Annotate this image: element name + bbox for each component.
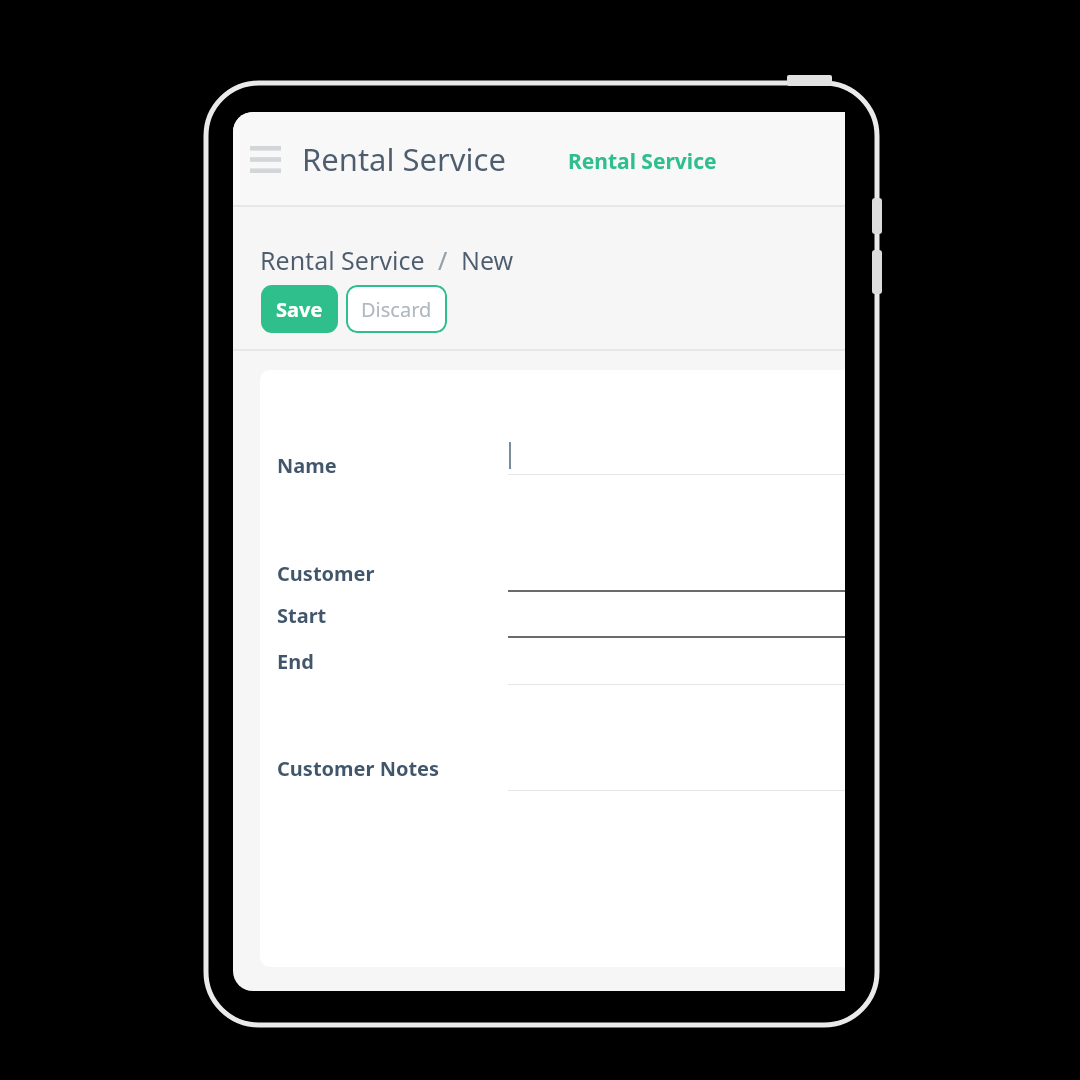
staticText: Name [277, 452, 337, 479]
button[interactable]: Discard [346, 285, 447, 333]
staticText: Discard [361, 296, 432, 323]
staticText: / [425, 243, 461, 277]
staticText: Save [276, 296, 323, 323]
button[interactable]: Rental Service [302, 138, 506, 180]
staticText: Start [277, 602, 327, 629]
button[interactable]: Customer Notes input [508, 757, 845, 791]
button[interactable]: Rental Service [260, 243, 425, 277]
staticText: Customer Notes [277, 755, 440, 782]
staticText: End [277, 648, 314, 675]
staticText: New [461, 243, 514, 277]
button[interactable]: Open navigation drawer [241, 135, 289, 183]
button[interactable]: Save [261, 285, 338, 333]
button[interactable]: Customer input [508, 558, 845, 592]
staticText: Customer [277, 560, 375, 587]
button[interactable]: End input [508, 651, 845, 685]
button[interactable]: Start input [508, 604, 845, 638]
button[interactable]: Rental Service [568, 147, 717, 176]
button[interactable]: Name input [508, 441, 845, 475]
